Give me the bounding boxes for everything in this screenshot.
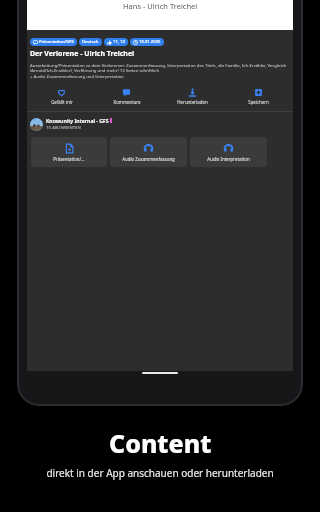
- staticText: Speichern: [248, 99, 269, 105]
- button[interactable]: Präsentation/...: [31, 137, 107, 167]
- button[interactable]: Präsentation/GFS: [30, 38, 77, 46]
- staticText: Kommentare: [113, 99, 141, 105]
- staticText: Deutsch: [82, 39, 99, 45]
- staticText: Ausarbeitung/Präsentation zu dem Verlore…: [30, 62, 290, 80]
- button[interactable]: Kommentare: [94, 86, 159, 107]
- button[interactable]: Knowunity Internal - GFS: [27, 116, 293, 132]
- staticText: Hans - Ulrich Treichel: [123, 1, 198, 11]
- staticText: Audio Zusammenfassung: [122, 156, 175, 162]
- staticText: Knowunity Internal - GFS: [46, 117, 109, 124]
- button[interactable]: 15.01.2025: [130, 38, 164, 46]
- staticText: 11, 12: [113, 39, 125, 45]
- button[interactable]: Audio Interpretation: [190, 137, 267, 167]
- button[interactable]: Herunterladen: [159, 86, 225, 107]
- staticText: 15.01.2025: [139, 39, 161, 45]
- staticText: Content: [109, 426, 212, 460]
- button[interactable]: Gefällt mir: [29, 86, 94, 107]
- staticText: Präsentation/GFS: [39, 39, 74, 45]
- staticText: Präsentation/...: [53, 156, 85, 162]
- button[interactable]: 11, 12: [104, 38, 128, 46]
- staticText: 15 ABONNENTEN: [46, 125, 81, 131]
- button[interactable]: Deutsch: [79, 38, 102, 46]
- staticText: Herunterladen: [177, 99, 208, 105]
- staticText: Audio Interpretation: [207, 156, 250, 162]
- button[interactable]: Speichern: [225, 86, 291, 107]
- button[interactable]: Audio Zusammenfassung: [110, 137, 187, 167]
- staticText: direkt in der App anschauen oder herunte…: [46, 466, 274, 480]
- staticText: Der Verlorene - Ulrich Treichel: [30, 49, 135, 59]
- staticText: Gefällt mir: [51, 99, 73, 105]
